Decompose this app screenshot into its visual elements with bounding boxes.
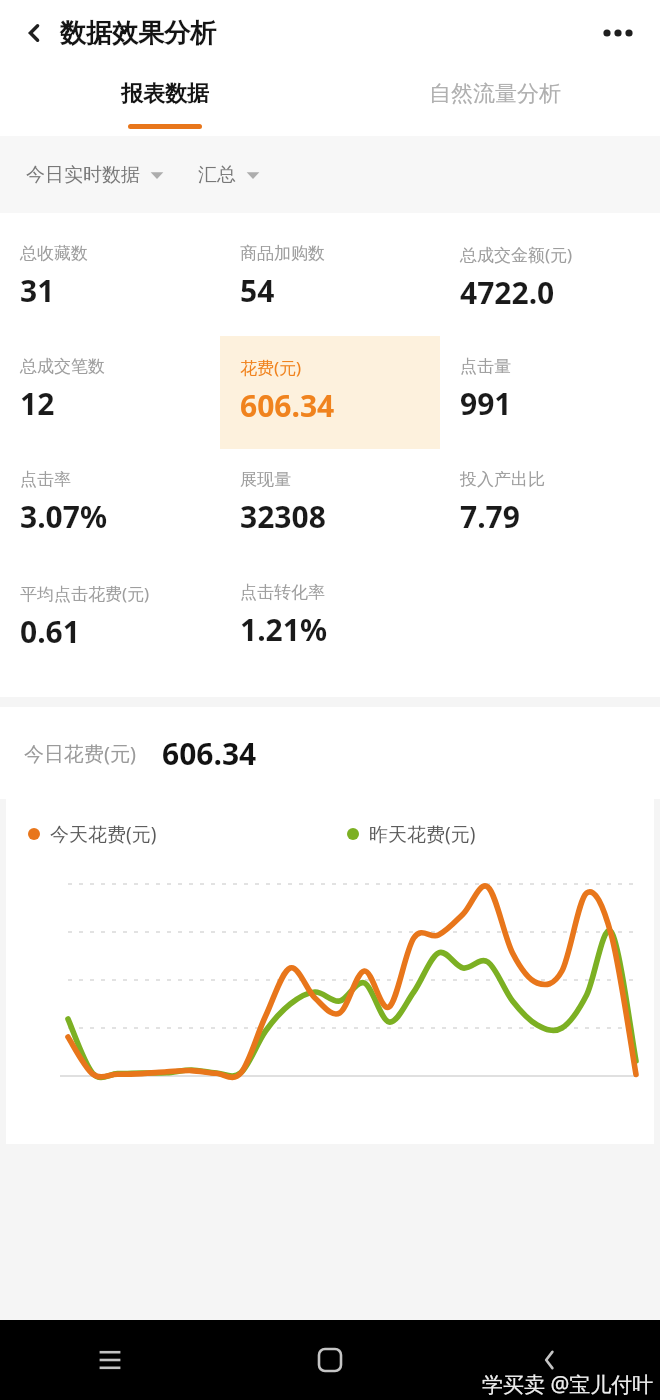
button[interactable]: 花费(元)	[220, 336, 440, 449]
button[interactable]: 昨天花费(元)	[347, 821, 476, 847]
staticText: 平均点击花费(元)	[20, 582, 150, 605]
staticText: 31	[20, 270, 55, 311]
button[interactable]: 展现量	[220, 449, 440, 562]
staticText: 商品加购数	[240, 243, 325, 264]
button[interactable]: 今天花费(元)	[28, 821, 157, 847]
staticText: 汇总	[198, 163, 236, 187]
staticText: 1.21%	[240, 609, 327, 650]
staticText: 今日花费(元)	[24, 740, 136, 767]
button[interactable]: 汇总	[196, 155, 262, 195]
button[interactable]: Home	[220, 1320, 440, 1400]
staticText: 606.34	[240, 385, 335, 426]
staticText: 投入产出比	[460, 469, 545, 490]
button[interactable]: 总收藏数	[0, 223, 220, 336]
button[interactable]: 投入产出比	[440, 449, 660, 562]
button[interactable]: 自然流量分析	[330, 66, 660, 136]
button[interactable]: 点击转化率	[220, 562, 440, 675]
button[interactable]: 报表数据	[0, 66, 330, 136]
staticText: 总成交金额(元)	[460, 243, 573, 266]
staticText: 自然流量分析	[429, 80, 561, 108]
button[interactable]: 点击量	[440, 336, 660, 449]
button[interactable]: Back	[14, 13, 54, 53]
staticText: 32308	[240, 496, 326, 537]
staticText: 数据效果分析	[60, 17, 216, 50]
staticText: 991	[460, 383, 512, 424]
button[interactable]: More options	[592, 7, 644, 59]
staticText: 总成交笔数	[20, 356, 105, 377]
staticText: 606.34	[162, 733, 257, 774]
staticText: 点击转化率	[240, 582, 325, 603]
staticText: 3.07%	[20, 496, 107, 537]
button[interactable]: 点击率	[0, 449, 220, 562]
button[interactable]: 平均点击花费(元)	[0, 562, 220, 675]
staticText: 昨天花费(元)	[369, 821, 476, 847]
staticText: 0.61	[20, 611, 80, 652]
staticText: 今日实时数据	[26, 163, 140, 187]
button[interactable]: Back	[440, 1320, 660, 1400]
staticText: 花费(元)	[240, 356, 302, 379]
staticText: 学买卖 @宝儿付叶	[482, 1370, 654, 1399]
staticText: 54	[240, 270, 275, 311]
staticText: 12	[20, 383, 55, 424]
staticText: 报表数据	[121, 80, 209, 108]
staticText: 点击量	[460, 356, 511, 377]
button[interactable]: Recent apps	[0, 1320, 220, 1400]
button[interactable]: 今日实时数据	[24, 155, 166, 195]
staticText: 点击率	[20, 469, 71, 490]
button[interactable]: 总成交金额(元)	[440, 223, 660, 336]
button[interactable]: 总成交笔数	[0, 336, 220, 449]
staticText: 4722.0	[460, 272, 555, 313]
staticText: 7.79	[460, 496, 520, 537]
staticText: 总收藏数	[20, 243, 88, 264]
button[interactable]: 商品加购数	[220, 223, 440, 336]
staticText: 展现量	[240, 469, 291, 490]
staticText: 今天花费(元)	[50, 821, 157, 847]
